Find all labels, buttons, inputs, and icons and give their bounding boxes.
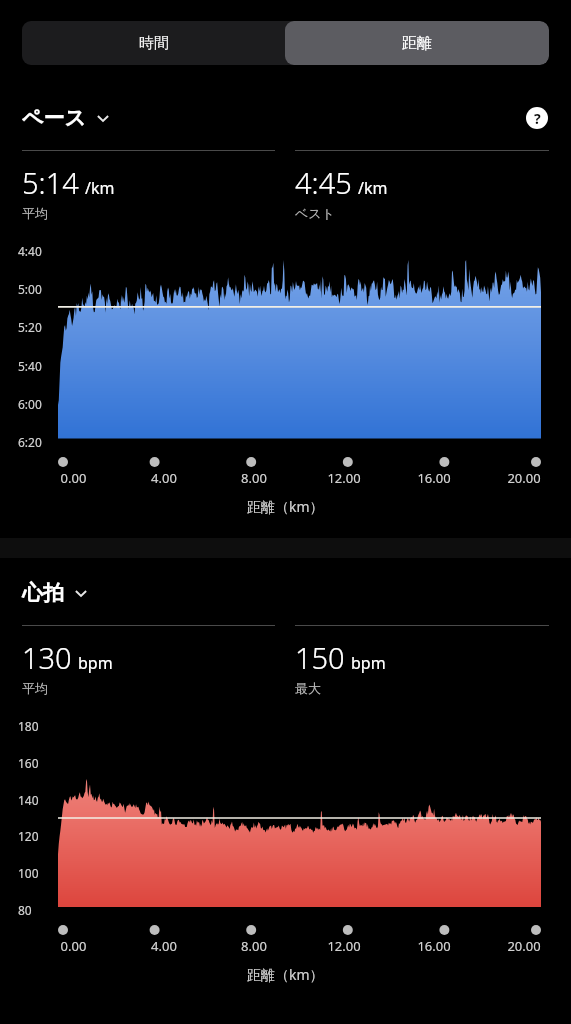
staticText: /km bbox=[85, 177, 115, 199]
staticText: 距離（km） bbox=[247, 965, 324, 984]
staticText: 5:14 bbox=[22, 163, 79, 202]
staticText: 120 bbox=[18, 828, 39, 844]
staticText: 8.00 bbox=[209, 469, 299, 487]
staticText: ベスト bbox=[295, 205, 335, 221]
button[interactable]: ペース bbox=[22, 103, 119, 133]
staticText: 12.00 bbox=[299, 937, 389, 955]
button[interactable]: 心拍 bbox=[22, 578, 97, 608]
staticText: 平均 bbox=[22, 205, 48, 221]
staticText: ? bbox=[534, 109, 541, 128]
staticText: 8.00 bbox=[209, 937, 299, 955]
staticText: 5:40 bbox=[18, 358, 42, 374]
staticText: 140 bbox=[18, 792, 39, 808]
staticText: 4:45 bbox=[295, 163, 352, 202]
button[interactable]: 時間 bbox=[22, 21, 285, 65]
staticText: 平均 bbox=[22, 680, 48, 696]
staticText: 4.00 bbox=[119, 937, 209, 955]
staticText: 180 bbox=[18, 718, 39, 734]
staticText: 6:00 bbox=[18, 396, 42, 412]
staticText: 4.00 bbox=[119, 469, 209, 487]
staticText: 20.00 bbox=[479, 469, 569, 487]
staticText: 心拍 bbox=[22, 580, 64, 606]
staticText: 100 bbox=[18, 865, 39, 881]
staticText: 16.00 bbox=[389, 469, 479, 487]
staticText: 16.00 bbox=[389, 937, 479, 955]
staticText: bpm bbox=[78, 652, 113, 674]
staticText: 0.00 bbox=[28, 937, 119, 955]
staticText: 80 bbox=[18, 902, 32, 918]
staticText: 12.00 bbox=[299, 469, 389, 487]
staticText: 時間 bbox=[139, 34, 169, 53]
button[interactable]: 距離 bbox=[285, 21, 549, 65]
staticText: 6:20 bbox=[18, 434, 42, 450]
staticText: 20.00 bbox=[479, 937, 569, 955]
staticText: 130 bbox=[22, 638, 72, 677]
staticText: 4:40 bbox=[18, 243, 42, 259]
staticText: 0.00 bbox=[28, 469, 119, 487]
staticText: 5:00 bbox=[18, 281, 42, 297]
staticText: ペース bbox=[22, 105, 86, 131]
staticText: 5:20 bbox=[18, 319, 42, 335]
staticText: 160 bbox=[18, 755, 39, 771]
staticText: 150 bbox=[295, 638, 345, 677]
staticText: 距離（km） bbox=[247, 497, 324, 516]
staticText: 最大 bbox=[295, 680, 321, 696]
staticText: 距離 bbox=[402, 34, 432, 53]
staticText: /km bbox=[358, 177, 388, 199]
staticText: bpm bbox=[351, 652, 386, 674]
button[interactable]: ヘルプ bbox=[525, 106, 549, 130]
